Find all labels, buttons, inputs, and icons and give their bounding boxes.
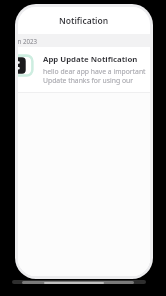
staticText: Update thanks for using our app. [43, 76, 148, 85]
other: App icon [18, 54, 34, 77]
staticText: hello dear app have a important [43, 67, 146, 76]
staticText: Notification [59, 15, 109, 27]
staticText: App Update Notification [43, 54, 138, 65]
button[interactable]: Notification [18, 7, 150, 34]
staticText: Jun 2023 [18, 37, 38, 45]
button[interactable]: App icon [18, 47, 150, 92]
